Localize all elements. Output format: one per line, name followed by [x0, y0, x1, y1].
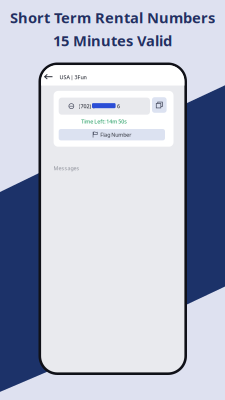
- staticText: Time Left: 14m 50s: [81, 118, 127, 125]
- button[interactable]: Flag Number: [41, 65, 184, 372]
- staticText: Flag Number: [100, 131, 131, 138]
- staticText: USA | 3Fun: [59, 74, 86, 81]
- staticText: Short Term Rental Numbers: [10, 8, 215, 27]
- staticText: Messages: [54, 165, 80, 172]
- staticText: 6: [117, 103, 120, 110]
- staticText: 15 Minutes Valid: [53, 31, 172, 50]
- button[interactable]: Back: [41, 65, 184, 372]
- button[interactable]: Copy number: [41, 65, 184, 372]
- staticText: (702) 5: [78, 103, 95, 110]
